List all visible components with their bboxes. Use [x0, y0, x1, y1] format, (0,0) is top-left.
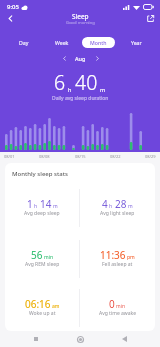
button[interactable]: 0	[80, 284, 155, 331]
staticText: am	[52, 303, 60, 310]
staticText: 08/29	[145, 154, 156, 159]
staticText: 06:16	[25, 297, 51, 311]
button[interactable]: 11:36	[80, 233, 155, 284]
button[interactable]: 56	[5, 233, 79, 284]
staticText: 0	[109, 297, 115, 311]
staticText: 08/08	[39, 154, 50, 159]
staticText: m	[53, 203, 58, 210]
staticText: Monthly sleep stats	[12, 170, 68, 178]
button[interactable]: Day	[7, 37, 40, 48]
staticText: 28	[115, 197, 127, 211]
button[interactable]: Next month	[91, 52, 103, 64]
staticText: m	[128, 203, 133, 210]
staticText: pm	[127, 254, 135, 261]
staticText: h	[109, 203, 113, 210]
button[interactable]: 1	[5, 182, 79, 233]
staticText: 4	[102, 197, 108, 211]
staticText: Daily avg sleep duration	[52, 95, 109, 102]
staticText: min	[44, 254, 54, 261]
staticText: Avg light sleep	[100, 210, 135, 217]
staticText: 56	[31, 248, 43, 262]
staticText: 14	[40, 197, 52, 211]
staticText: min	[116, 303, 126, 310]
staticText: Avg deep sleep	[24, 210, 60, 217]
staticText: Day	[19, 39, 29, 46]
staticText: Week	[55, 39, 69, 46]
button[interactable]: Back	[116, 331, 132, 347]
staticText: 08/15	[75, 154, 86, 159]
button[interactable]: Back	[2, 10, 18, 26]
button[interactable]: 06:16	[5, 284, 79, 331]
button[interactable]: Previous month	[58, 52, 70, 64]
staticText: 9:05	[7, 3, 19, 11]
staticText: Year	[131, 39, 142, 46]
staticText: 11:36	[100, 248, 126, 262]
staticText: 08/22	[110, 154, 121, 159]
staticText: m	[100, 86, 106, 93]
staticText: 6	[54, 69, 66, 96]
staticText: h	[34, 203, 38, 210]
staticText: 40	[75, 69, 98, 96]
staticText: Fell asleep at	[102, 261, 133, 268]
staticText: Avg REM sleep	[25, 261, 60, 268]
button[interactable]: 4	[80, 182, 155, 233]
button[interactable]: Recent apps	[28, 331, 44, 347]
staticText: Avg time awake	[99, 310, 137, 317]
staticText: Month	[90, 39, 107, 46]
staticText: Aug	[75, 55, 86, 62]
staticText: Good morning	[66, 20, 95, 26]
staticText: 08/01	[4, 154, 15, 159]
staticText: Sleep	[72, 12, 89, 21]
button[interactable]: Home	[72, 331, 88, 347]
staticText: h	[68, 86, 72, 93]
button[interactable]: Month	[82, 37, 115, 48]
button[interactable]: Year	[120, 37, 153, 48]
button[interactable]: Share	[142, 10, 158, 26]
staticText: 1	[27, 197, 33, 211]
button[interactable]: Week	[45, 37, 78, 48]
staticText: Woke up at	[29, 310, 56, 317]
